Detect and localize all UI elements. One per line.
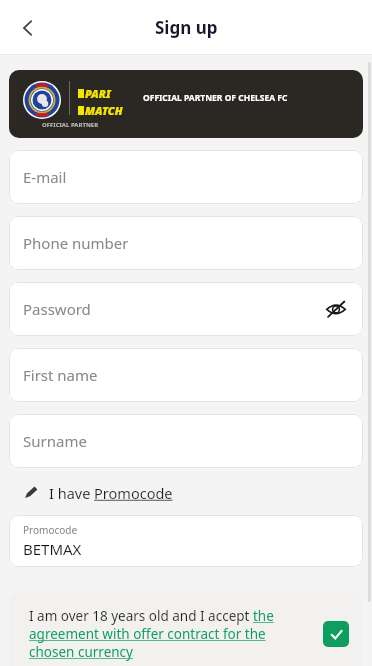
button[interactable]: PARI xyxy=(9,70,363,138)
button[interactable]: E-mail xyxy=(9,150,363,204)
staticText: OFFICIAL PARTNER xyxy=(42,121,99,129)
staticText: MATCH xyxy=(85,103,123,118)
staticText: Sign up xyxy=(155,16,218,39)
button[interactable]: Surname xyxy=(9,414,363,468)
staticText: I have Promocode xyxy=(49,483,173,503)
staticText: Surname xyxy=(23,431,87,451)
button[interactable]: I have Promocode xyxy=(9,478,363,508)
staticText: I am over 18 years old and I accept the … xyxy=(29,607,313,661)
staticText: Password xyxy=(23,299,91,319)
button[interactable]: First name xyxy=(9,348,363,402)
staticText: BETMAX xyxy=(23,539,82,559)
staticText: PARI xyxy=(85,86,111,101)
staticText: OFFICIAL PARTNER OF CHELSEA FC xyxy=(143,92,288,104)
button[interactable]: Phone number xyxy=(9,216,363,270)
button[interactable]: Accept agreement xyxy=(323,621,349,647)
button[interactable]: Password xyxy=(9,282,363,336)
button[interactable]: Back xyxy=(6,6,50,50)
staticText: E-mail xyxy=(23,167,67,187)
staticText: First name xyxy=(23,365,98,385)
staticText: Promocode xyxy=(23,523,78,537)
staticText: Phone number xyxy=(23,233,129,253)
button[interactable]: Show password xyxy=(321,294,351,324)
button[interactable]: Promocode xyxy=(9,515,363,567)
